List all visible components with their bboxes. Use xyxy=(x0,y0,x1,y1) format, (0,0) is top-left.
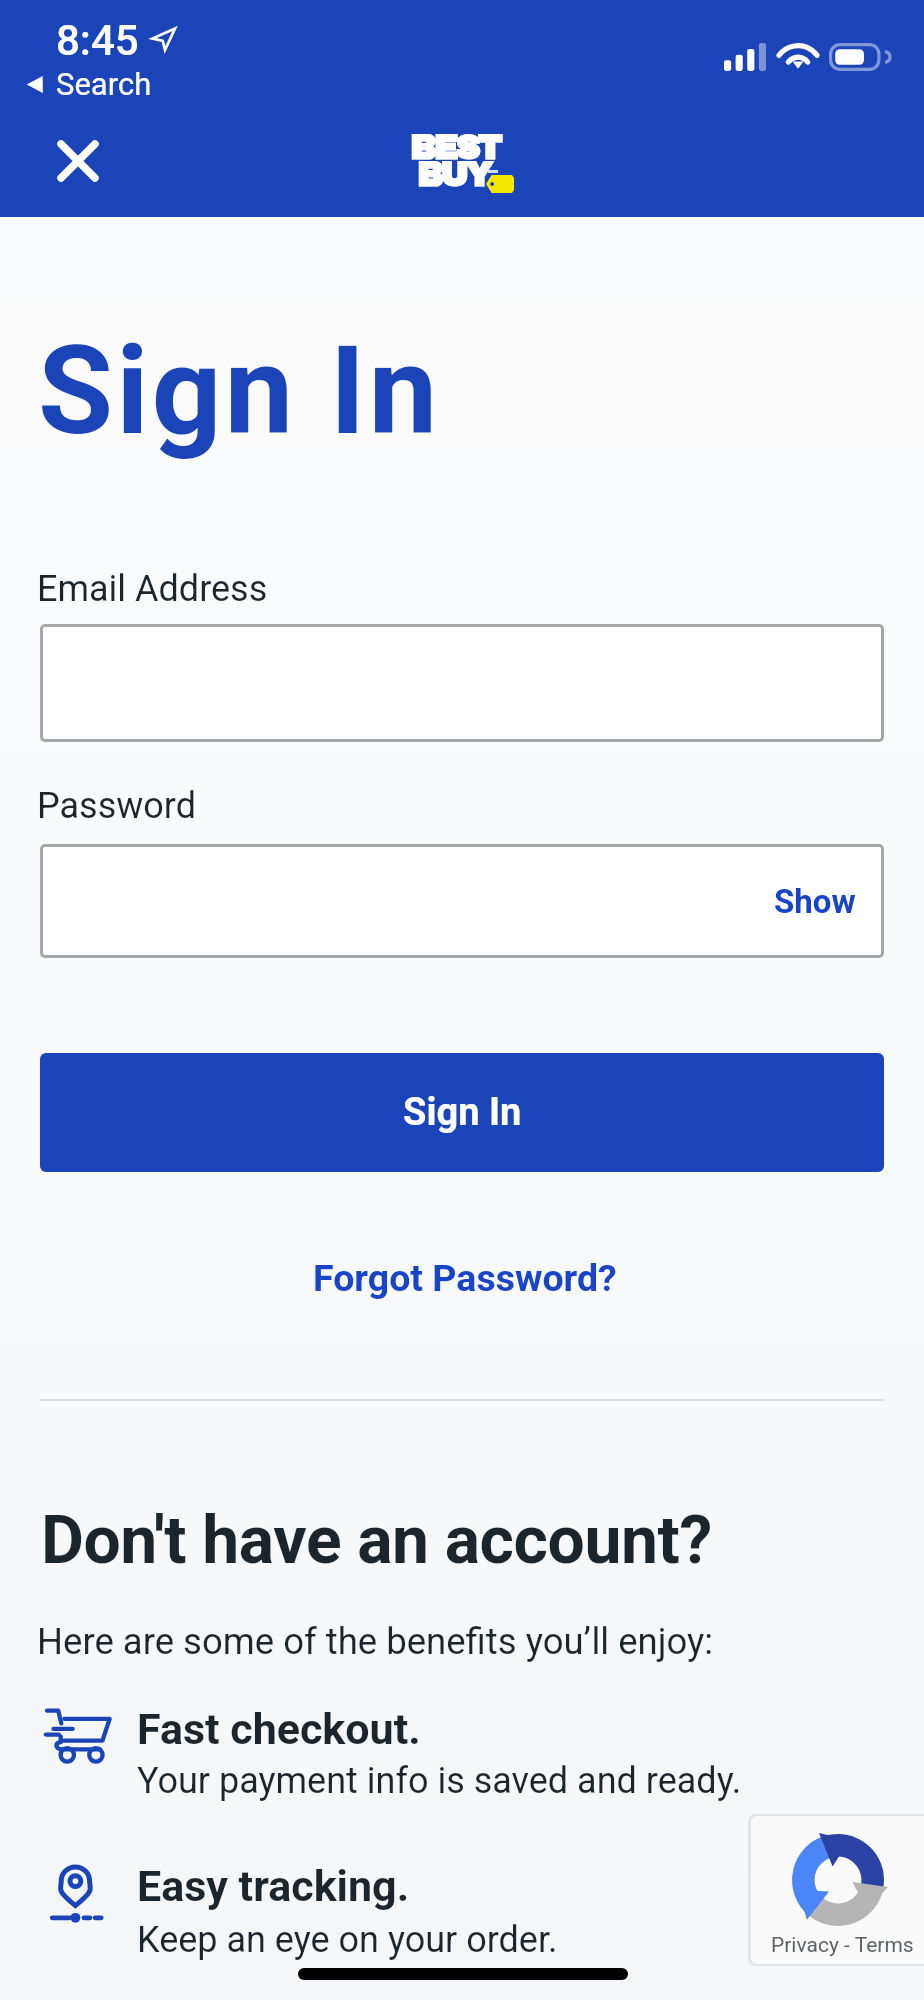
staticText: Forgot Password? xyxy=(313,1256,617,1300)
button[interactable]: Close xyxy=(38,121,118,201)
staticText: 8:45 xyxy=(56,16,139,65)
staticText: Fast checkout. xyxy=(137,1704,421,1754)
button[interactable]: reCAPTCHA Privacy Terms xyxy=(751,1816,924,1964)
staticText: Email Address xyxy=(37,568,268,610)
button[interactable]: Forgot Password? xyxy=(295,1242,635,1322)
staticText: Your payment info is saved and ready. xyxy=(137,1760,742,1802)
staticText: Don't have an account? xyxy=(41,1502,712,1579)
staticText: Keep an eye on your order. xyxy=(137,1919,558,1961)
button[interactable]: Sign In xyxy=(40,1053,884,1172)
button[interactable]: Password field xyxy=(40,844,884,958)
staticText: Privacy - Terms xyxy=(771,1933,914,1958)
staticText: Sign In xyxy=(403,1090,522,1135)
staticText: BUY xyxy=(417,157,491,193)
staticText: Show xyxy=(774,882,856,921)
staticText: Password xyxy=(37,785,197,827)
staticText: BEST xyxy=(410,130,500,166)
staticText: Here are some of the benefits you’ll enj… xyxy=(37,1620,714,1663)
button[interactable]: Show xyxy=(746,864,884,939)
staticText: Sign In xyxy=(38,320,441,463)
staticText: Search xyxy=(56,66,152,102)
button[interactable]: Email Address field xyxy=(40,624,884,742)
staticText: Easy tracking. xyxy=(137,1861,410,1911)
